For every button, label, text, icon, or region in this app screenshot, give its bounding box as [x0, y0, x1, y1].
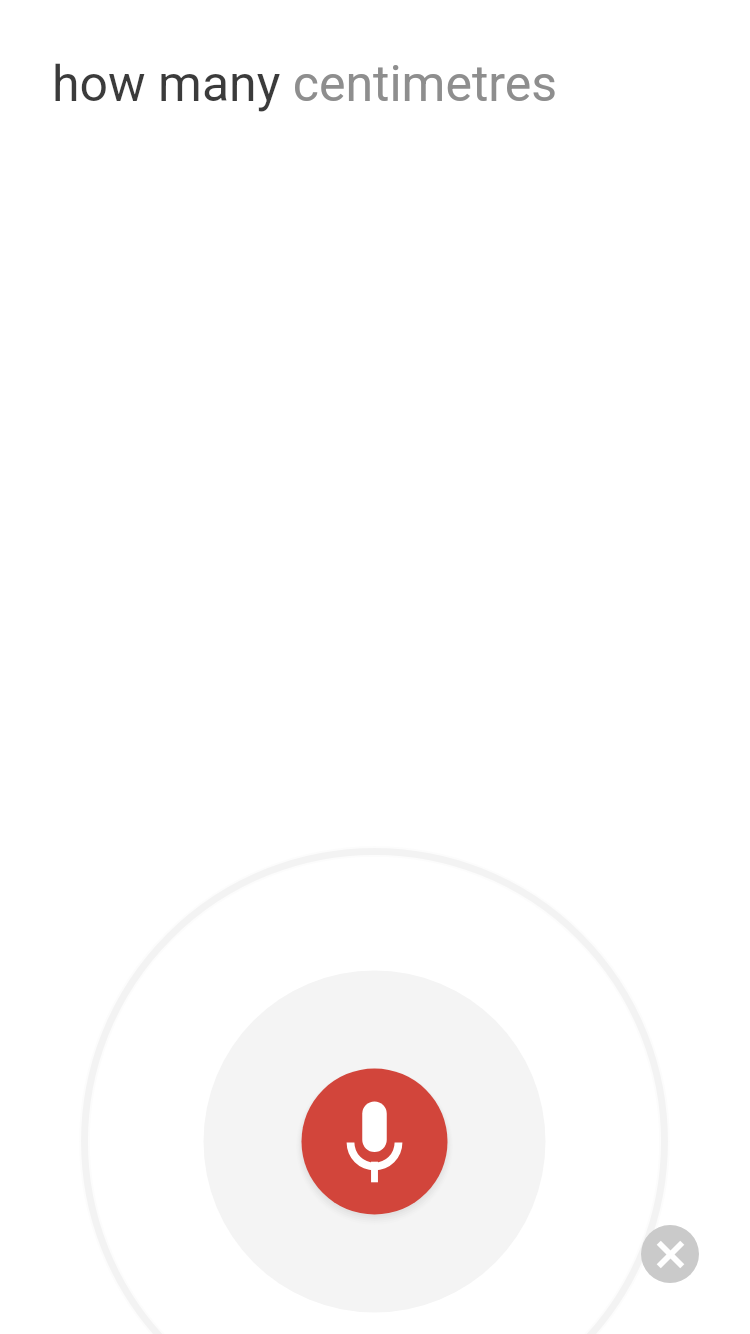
staticText: how many centimetres	[52, 55, 558, 114]
button[interactable]: Close	[641, 1225, 699, 1283]
button[interactable]: Microphone, tap to speak	[301, 1068, 448, 1215]
